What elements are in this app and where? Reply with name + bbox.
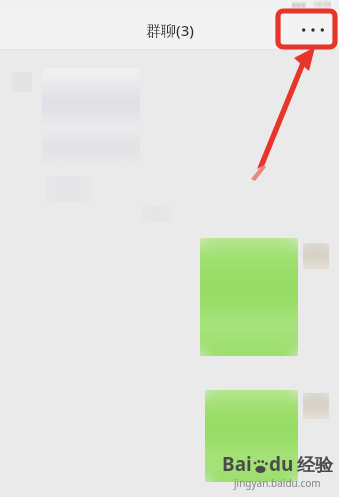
staticText: jingyan.baidu.com (234, 476, 321, 490)
staticText: Bai (222, 451, 252, 477)
staticText: 14:55 (313, 0, 331, 10)
button[interactable]: More options (287, 13, 339, 46)
staticText: 群聊(3) (146, 20, 194, 40)
staticText: du (269, 451, 294, 477)
staticText: ▮ ▮ ▮ (292, 1, 306, 9)
staticText: 经验 (297, 454, 333, 477)
